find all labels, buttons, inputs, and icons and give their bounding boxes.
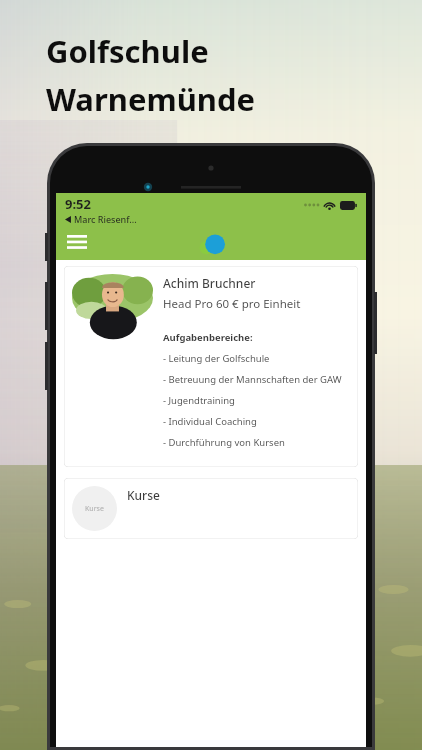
staticText: - Betreuung der Mannschaften der GAW bbox=[163, 373, 342, 386]
staticText: - Individual Coaching bbox=[163, 415, 257, 428]
staticText: Warnemünde bbox=[46, 78, 256, 120]
staticText: Aufgabenbereiche: bbox=[163, 331, 253, 344]
staticText: Achim Bruchner bbox=[163, 275, 256, 291]
button[interactable]: Menü bbox=[64, 229, 90, 255]
staticText: - Leitung der Golfschule bbox=[163, 352, 270, 365]
staticText: Kurse bbox=[85, 504, 104, 514]
button[interactable]: Logo bbox=[194, 234, 228, 256]
button[interactable]: Achim Bruchner bbox=[64, 266, 358, 467]
staticText: - Durchführung von Kursen bbox=[163, 436, 285, 449]
staticText: - Jugendtraining bbox=[163, 394, 235, 407]
button[interactable]: Kurse bbox=[64, 478, 358, 539]
staticText: Marc Riesenf... bbox=[74, 213, 137, 225]
staticText: Head Pro 60 € pro Einheit bbox=[163, 296, 301, 312]
staticText: Golfschule bbox=[46, 30, 209, 72]
staticText: Kurse bbox=[127, 487, 160, 503]
staticText: 9:52 bbox=[65, 195, 91, 213]
